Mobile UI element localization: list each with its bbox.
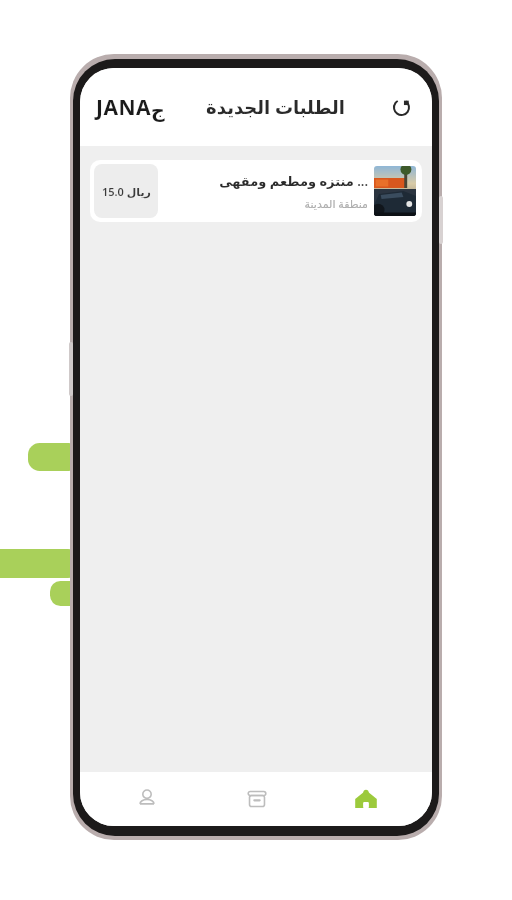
staticText: ج — [151, 99, 165, 121]
button[interactable]: Refresh — [386, 92, 416, 122]
button[interactable]: 15.0 ريال — [90, 160, 422, 222]
button[interactable]: Home — [311, 772, 420, 826]
button[interactable]: Profile — [92, 772, 202, 826]
staticText: JANA — [96, 93, 152, 122]
button[interactable]: Orders — [202, 772, 311, 826]
staticText: منطقة المدينة — [304, 196, 368, 211]
staticText: 15.0 ريال — [102, 184, 151, 199]
staticText: منتزه ومطعم ومقهى ... — [219, 172, 368, 190]
staticText: الطلبات الجديدة — [206, 95, 345, 120]
button[interactable]: JANA — [96, 93, 166, 122]
